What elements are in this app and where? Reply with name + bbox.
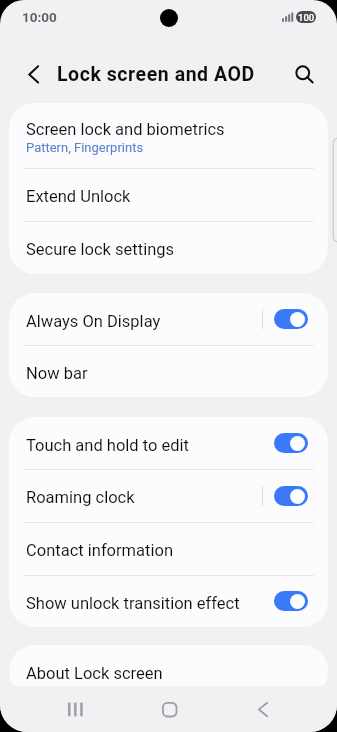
button[interactable]: Show unlock transition effect <box>9 575 328 627</box>
button[interactable]: Always On Display <box>9 293 328 345</box>
button[interactable]: Touch and hold to edit <box>9 417 328 469</box>
staticText: Lock screen and AOD <box>57 63 255 86</box>
button[interactable]: Search <box>287 57 319 89</box>
staticText: Extend Unlock <box>26 187 131 206</box>
staticText: Screen lock and biometrics <box>26 120 225 139</box>
button[interactable]: About Lock screen <box>9 645 328 697</box>
button[interactable]: Toggle Show unlock transition effect <box>274 591 308 611</box>
staticText: Secure lock settings <box>26 240 175 259</box>
staticText: Show unlock transition effect <box>26 594 240 613</box>
staticText: 100 <box>298 12 315 23</box>
button[interactable]: Roaming clock <box>9 469 328 522</box>
staticText: Now bar <box>26 364 88 383</box>
button[interactable]: Contact information <box>9 522 328 575</box>
button[interactable]: Extend Unlock <box>9 168 328 221</box>
staticText: Pattern, Fingerprints <box>26 140 144 155</box>
staticText: Touch and hold to edit <box>26 436 189 455</box>
button[interactable]: Toggle Touch and hold to edit <box>274 433 308 453</box>
button[interactable]: Back <box>236 686 290 732</box>
button[interactable]: Now bar <box>9 345 328 397</box>
button[interactable]: Toggle Always On Display <box>274 309 308 329</box>
staticText: Always On Display <box>26 312 161 331</box>
staticText: About Lock screen <box>26 664 163 683</box>
button[interactable]: Toggle Roaming clock <box>274 486 308 506</box>
staticText: 10:00 <box>22 9 57 25</box>
button[interactable]: Back <box>16 57 51 92</box>
button[interactable]: Screen lock and biometrics <box>9 103 328 168</box>
button[interactable]: Recents <box>48 686 102 732</box>
button[interactable]: Home <box>142 686 196 732</box>
staticText: Contact information <box>26 541 174 560</box>
staticText: Roaming clock <box>26 488 135 507</box>
button[interactable]: Secure lock settings <box>9 221 328 274</box>
